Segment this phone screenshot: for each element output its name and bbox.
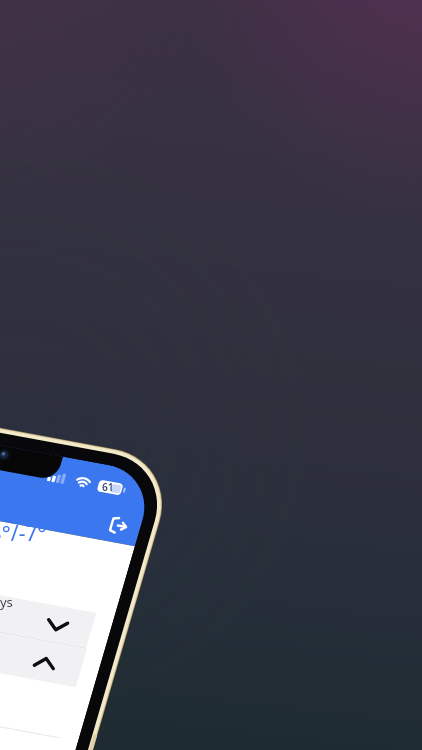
other: Weather app preview [0,0,422,750]
